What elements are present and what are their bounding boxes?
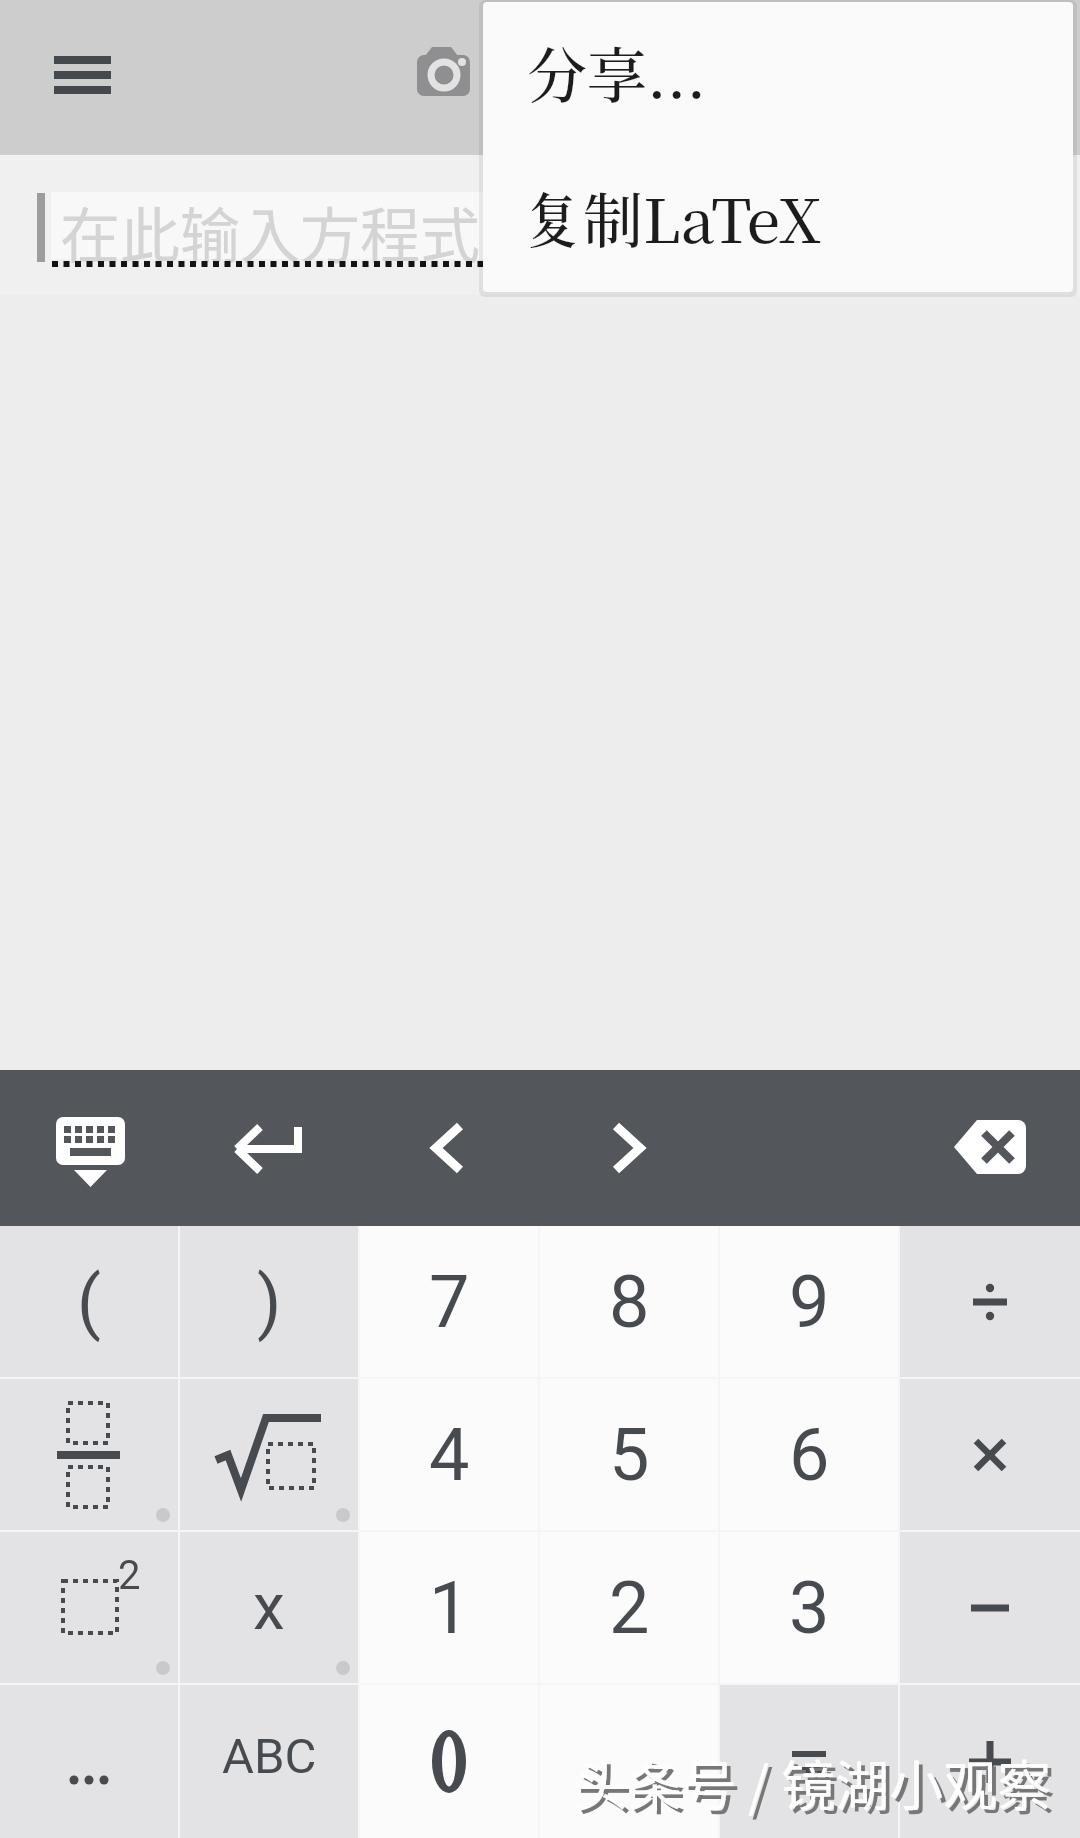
button[interactable]: x: [180, 1532, 358, 1683]
staticText: 2: [118, 1552, 141, 1599]
button[interactable]: [0, 1379, 178, 1530]
button[interactable]: 5: [540, 1379, 718, 1530]
button[interactable]: 7: [360, 1226, 538, 1377]
staticText: 复制LaTeX: [523, 174, 822, 260]
button[interactable]: 分享...: [483, 2, 1073, 147]
button[interactable]: [578, 1098, 678, 1198]
staticText: ): [257, 1261, 282, 1343]
staticText: 4: [429, 1413, 470, 1497]
staticText: 9: [789, 1260, 830, 1344]
button[interactable]: 9: [720, 1226, 898, 1377]
button[interactable]: [720, 1685, 898, 1838]
staticText: 8: [609, 1260, 650, 1344]
staticText: 1: [429, 1566, 470, 1650]
staticText: 7: [429, 1260, 470, 1344]
button[interactable]: 4: [360, 1379, 538, 1530]
staticText: 头条号 / 镜湖小观察: [574, 1743, 1052, 1821]
staticText: ABC: [222, 1728, 317, 1785]
button[interactable]: [900, 1379, 1080, 1530]
button[interactable]: [408, 38, 478, 104]
button[interactable]: [900, 1226, 1080, 1377]
button[interactable]: [940, 1096, 1040, 1196]
button[interactable]: [398, 1098, 498, 1198]
button[interactable]: [40, 1095, 140, 1200]
button[interactable]: [0, 1685, 178, 1838]
staticText: 5: [609, 1413, 650, 1497]
button[interactable]: ): [180, 1226, 358, 1377]
staticText: (: [77, 1261, 101, 1343]
staticText: 在此输入方程式: [60, 188, 480, 275]
button[interactable]: [180, 1379, 358, 1530]
staticText: 分享...: [527, 29, 707, 115]
button[interactable]: [218, 1098, 318, 1198]
button[interactable]: 3: [720, 1532, 898, 1683]
button[interactable]: [900, 1532, 1080, 1683]
staticText: 2: [609, 1566, 650, 1650]
staticText: x: [253, 1570, 285, 1645]
button[interactable]: 2: [540, 1532, 718, 1683]
button[interactable]: 8: [540, 1226, 718, 1377]
button[interactable]: [540, 1685, 718, 1838]
button[interactable]: ABC: [180, 1685, 358, 1838]
button[interactable]: 6: [720, 1379, 898, 1530]
button[interactable]: 1: [360, 1532, 538, 1683]
staticText: 3: [789, 1566, 830, 1650]
button[interactable]: (: [0, 1226, 178, 1377]
staticText: 头条号 / 镜湖小观察: [578, 1747, 1056, 1825]
button[interactable]: 复制LaTeX: [483, 147, 1073, 292]
button[interactable]: [30, 30, 135, 122]
staticText: 6: [789, 1413, 830, 1497]
button[interactable]: 2: [0, 1532, 178, 1683]
button[interactable]: [360, 1685, 538, 1838]
button[interactable]: [900, 1685, 1080, 1838]
